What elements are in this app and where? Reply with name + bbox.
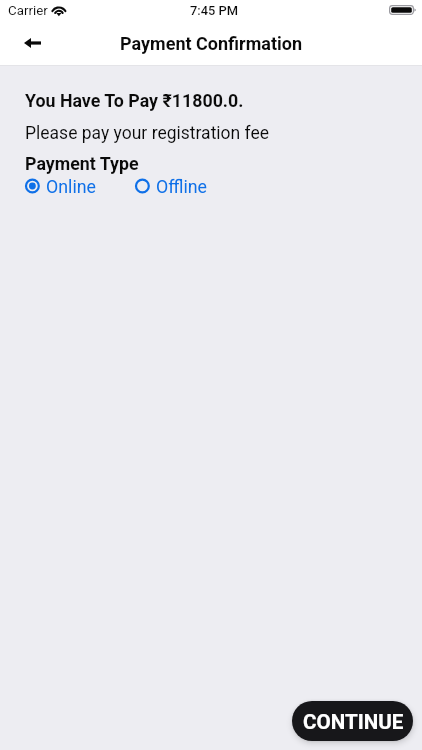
staticText: Please pay your registration fee — [25, 123, 270, 144]
button[interactable]: Online — [24, 175, 96, 197]
button[interactable]: Offline — [134, 175, 208, 197]
staticText: CONTINUE — [303, 710, 404, 734]
staticText: Online — [46, 176, 96, 197]
button[interactable]: CONTINUE — [292, 701, 413, 741]
button[interactable]: Back — [16, 27, 48, 59]
staticText: 7:45 PM — [190, 3, 239, 18]
staticText: Carrier — [8, 3, 48, 19]
staticText: Offline — [156, 176, 208, 197]
staticText: Payment Type — [25, 153, 139, 174]
staticText: Payment Confirmation — [120, 33, 302, 54]
staticText: You Have To Pay ₹11800.0. — [25, 90, 244, 111]
